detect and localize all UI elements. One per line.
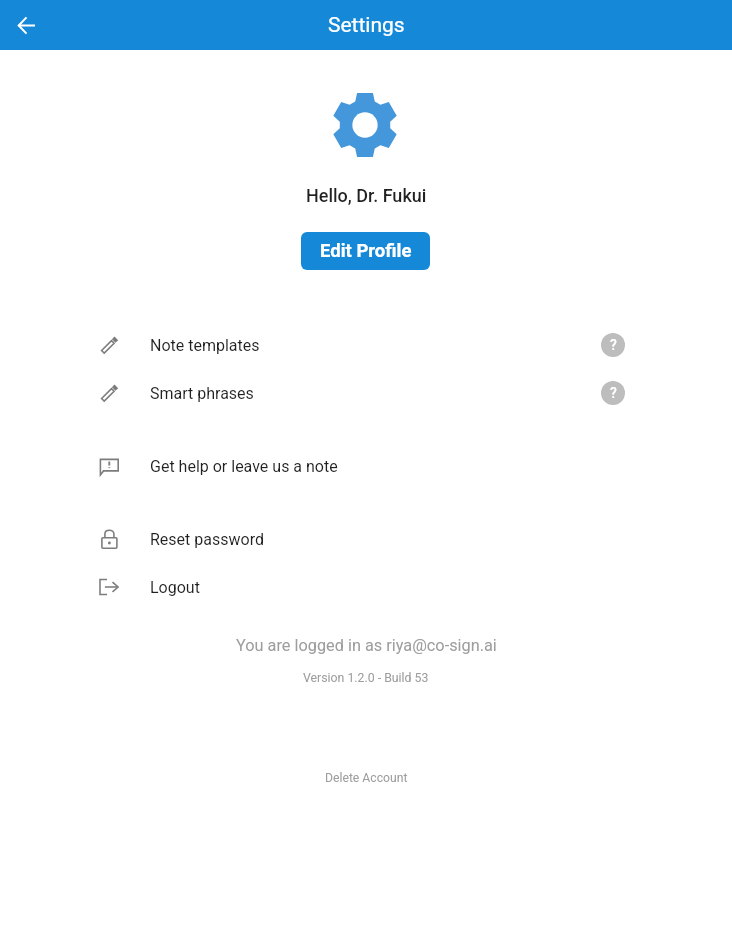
button[interactable]: Reset password bbox=[0, 515, 732, 563]
button[interactable]: Get help or leave us a note bbox=[0, 442, 732, 490]
staticText: Edit Profile bbox=[320, 240, 412, 262]
staticText: Reset password bbox=[150, 530, 264, 549]
staticText: Version 1.2.0 - Build 53 bbox=[303, 671, 429, 685]
staticText: ? bbox=[610, 385, 617, 401]
staticText: Hello, Dr. Fukui bbox=[306, 185, 427, 206]
staticText: ? bbox=[610, 337, 617, 353]
staticText: Logout bbox=[150, 578, 200, 597]
staticText: Smart phrases bbox=[150, 384, 254, 403]
staticText: You are logged in as riya@co-sign.ai bbox=[236, 636, 497, 655]
button[interactable]: Logout bbox=[0, 563, 732, 611]
button[interactable]: Help bbox=[601, 333, 625, 357]
button[interactable]: Edit Profile bbox=[301, 232, 430, 270]
button[interactable]: Smart phrases bbox=[0, 369, 732, 417]
button[interactable]: Note templates bbox=[0, 321, 732, 369]
button[interactable]: Delete Account bbox=[311, 766, 422, 790]
staticText: Settings bbox=[328, 13, 405, 38]
staticText: Delete Account bbox=[325, 771, 408, 785]
button[interactable]: Back bbox=[8, 7, 44, 43]
staticText: Get help or leave us a note bbox=[150, 457, 338, 476]
button[interactable]: Help bbox=[601, 381, 625, 405]
staticText: Note templates bbox=[150, 336, 260, 355]
